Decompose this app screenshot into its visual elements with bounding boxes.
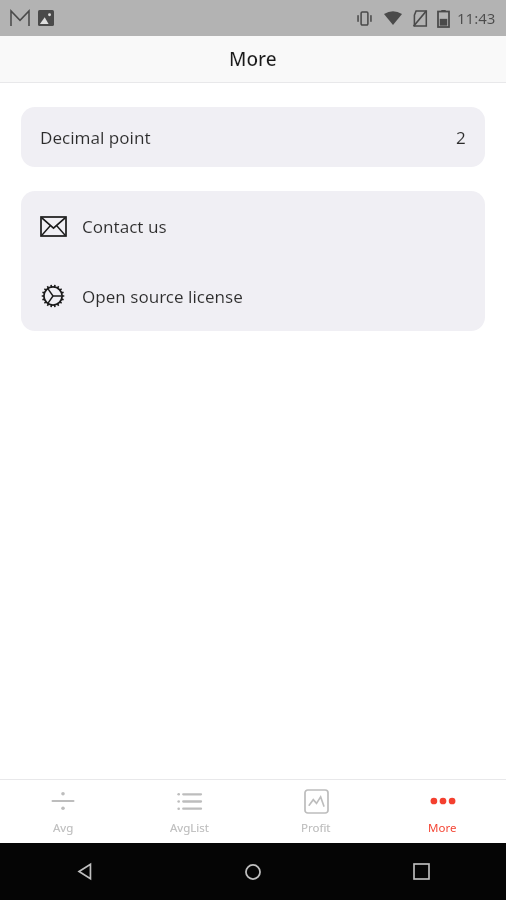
button[interactable]: More xyxy=(379,780,506,843)
button[interactable]: Avg xyxy=(0,780,126,843)
button[interactable]: AvgList xyxy=(126,780,252,843)
staticText: 11:43 xyxy=(457,8,496,28)
button[interactable]: Profit xyxy=(252,780,379,843)
button[interactable]: Decimal point xyxy=(21,107,485,167)
staticText: Avg xyxy=(53,820,74,836)
staticText: More xyxy=(229,46,277,72)
staticText: Profit xyxy=(301,820,331,836)
button[interactable]: Back xyxy=(0,843,168,900)
staticText: Contact us xyxy=(82,215,167,238)
staticText: 2 xyxy=(456,126,466,149)
staticText: AvgList xyxy=(170,820,209,836)
staticText: Open source license xyxy=(82,285,243,308)
button[interactable]: Contact us xyxy=(21,191,485,261)
staticText: Decimal point xyxy=(40,126,151,149)
button[interactable]: Open source license xyxy=(21,261,485,331)
button[interactable]: Home xyxy=(168,843,337,900)
staticText: More xyxy=(428,820,457,836)
button[interactable]: Recent apps xyxy=(337,843,506,900)
